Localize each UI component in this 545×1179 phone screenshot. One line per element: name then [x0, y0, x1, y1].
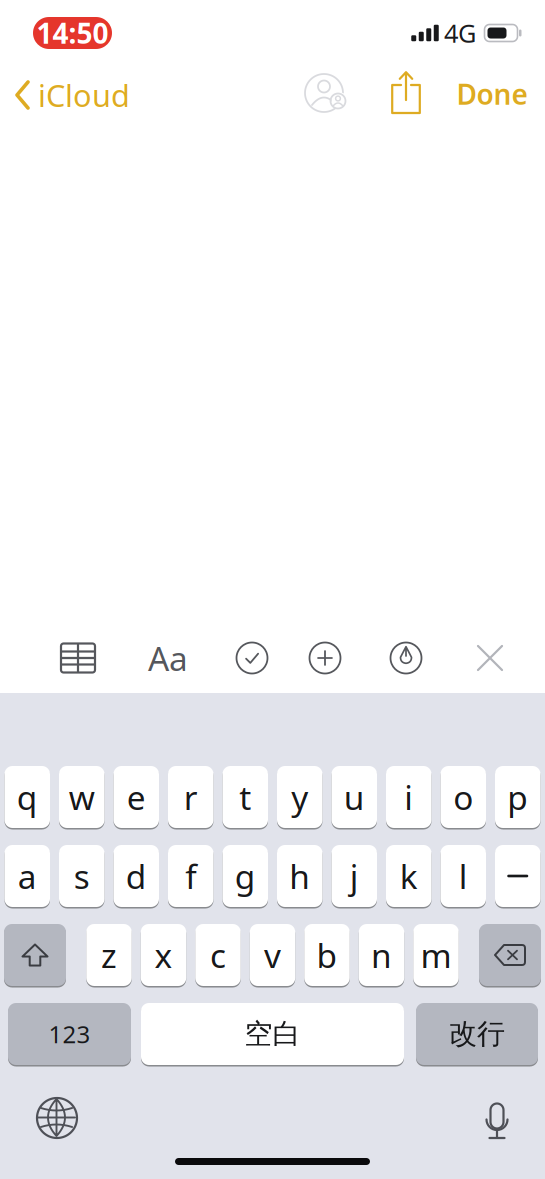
button[interactable]: u: [331, 766, 377, 828]
staticText: p: [507, 775, 528, 819]
staticText: f: [185, 854, 196, 898]
button[interactable]: d: [113, 845, 159, 907]
staticText: w: [69, 775, 95, 819]
button[interactable]: h: [277, 845, 322, 907]
button[interactable]: v: [250, 924, 295, 986]
staticText: s: [74, 854, 90, 898]
button[interactable]: Back to iCloud: [0, 75, 130, 115]
staticText: h: [289, 854, 310, 898]
button[interactable]: 改行: [416, 1003, 538, 1065]
staticText: v: [264, 933, 281, 977]
staticText: iCloud: [38, 75, 130, 115]
staticText: 改行: [449, 1017, 505, 1051]
button[interactable]: Next keyboard: [36, 1097, 77, 1138]
button[interactable]: Dismiss toolbar: [476, 644, 504, 672]
staticText: j: [350, 854, 359, 898]
button[interactable]: 空白: [141, 1003, 404, 1065]
button[interactable]: Share: [391, 70, 421, 114]
staticText: k: [400, 854, 418, 898]
button[interactable]: w: [59, 766, 104, 828]
button[interactable]: Checklist: [236, 642, 267, 673]
button[interactable]: t: [222, 766, 268, 828]
staticText: u: [344, 775, 365, 819]
button[interactable]: Delete: [479, 924, 541, 986]
button[interactable]: n: [359, 924, 404, 986]
staticText: Done: [456, 75, 527, 113]
button[interactable]: m: [413, 924, 459, 986]
button[interactable]: j: [331, 845, 377, 907]
button[interactable]: c: [195, 924, 241, 986]
button[interactable]: k: [386, 845, 431, 907]
button[interactable]: r: [168, 766, 213, 828]
button[interactable]: Add people: [304, 72, 348, 114]
button[interactable]: i: [386, 766, 431, 828]
button[interactable]: f: [168, 845, 213, 907]
staticText: d: [126, 854, 147, 898]
staticText: 空白: [244, 1017, 300, 1051]
button[interactable]: o: [440, 766, 486, 828]
staticText: l: [459, 854, 468, 898]
staticText: o: [453, 775, 473, 819]
button[interactable]: a: [4, 845, 50, 907]
staticText: c: [210, 933, 226, 977]
staticText: 4G: [444, 16, 476, 50]
staticText: x: [154, 933, 172, 977]
button[interactable]: Markup: [390, 642, 421, 673]
button[interactable]: y: [277, 766, 322, 828]
staticText: i: [404, 775, 413, 819]
staticText: t: [239, 775, 251, 819]
button[interactable]: 123: [8, 1003, 131, 1065]
button[interactable]: l: [440, 845, 486, 907]
button[interactable]: [495, 845, 540, 907]
button[interactable]: x: [141, 924, 186, 986]
staticText: y: [291, 775, 308, 819]
button[interactable]: e: [113, 766, 159, 828]
button[interactable]: Insert: [309, 642, 340, 673]
button[interactable]: b: [304, 924, 350, 986]
button[interactable]: s: [59, 845, 104, 907]
staticText: b: [316, 933, 337, 977]
button[interactable]: Text formatting: [148, 636, 188, 680]
button[interactable]: Done: [456, 75, 527, 113]
staticText: m: [420, 933, 451, 977]
staticText: 123: [48, 1018, 90, 1050]
staticText: r: [184, 775, 198, 819]
staticText: e: [127, 775, 146, 819]
staticText: z: [101, 933, 117, 977]
button[interactable]: z: [86, 924, 132, 986]
staticText: g: [235, 854, 256, 898]
button[interactable]: p: [495, 766, 540, 828]
staticText: 14:50: [36, 14, 108, 52]
button[interactable]: g: [222, 845, 268, 907]
staticText: Aa: [148, 636, 188, 680]
button[interactable]: Return to call: [33, 17, 112, 49]
staticText: n: [371, 933, 392, 977]
button[interactable]: q: [4, 766, 50, 828]
button[interactable]: Dictate: [485, 1103, 509, 1141]
button[interactable]: Insert table: [61, 643, 95, 672]
button[interactable]: Shift: [4, 924, 66, 986]
staticText: q: [17, 775, 38, 819]
staticText: a: [18, 854, 37, 898]
